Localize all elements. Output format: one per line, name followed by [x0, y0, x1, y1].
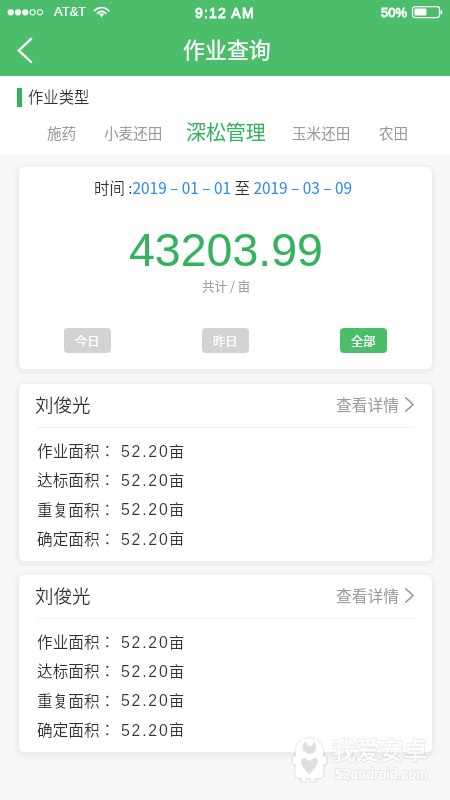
staticText: 我爱安卓: [332, 731, 428, 765]
button[interactable]: 刘俊光: [19, 384, 432, 427]
staticText: 作业类型: [28, 85, 90, 107]
staticText: 确定面积：: [37, 718, 116, 741]
staticText: 亩: [169, 717, 185, 739]
staticText: 亩: [169, 468, 185, 490]
staticText: 重复面积：: [37, 689, 116, 712]
staticText: 50%: [381, 5, 408, 20]
staticText: 亩: [169, 526, 185, 548]
staticText: 共计 / 亩: [202, 276, 251, 294]
button[interactable]: 深松管理: [173, 114, 279, 149]
staticText: 重复面积：: [37, 498, 116, 521]
staticText: 施药: [47, 122, 77, 143]
staticText: 查看详情: [336, 393, 399, 416]
staticText: 亩: [169, 630, 185, 652]
staticText: 亩: [169, 497, 185, 519]
staticText: 52.20: [121, 443, 170, 461]
staticText: 52.20: [121, 692, 170, 710]
button[interactable]: 全部: [340, 328, 387, 353]
staticText: 52.20: [121, 472, 170, 490]
staticText: 时间 :2019 – 01 – 01 至 2019 – 03 – 09: [94, 176, 353, 198]
staticText: 达标面积：: [37, 468, 116, 491]
staticText: 52.20: [121, 501, 170, 519]
staticText: 农田: [379, 122, 409, 143]
staticText: 昨日: [213, 332, 238, 350]
staticText: 亩: [169, 439, 185, 461]
staticText: 深松管理: [186, 117, 266, 146]
staticText: 玉米还田: [292, 122, 351, 143]
staticText: AT&T: [54, 4, 87, 19]
button[interactable]: 刘俊光: [19, 575, 432, 618]
staticText: 52.20: [121, 722, 170, 740]
button[interactable]: 玉米还田: [279, 119, 364, 146]
staticText: 刘俊光: [35, 582, 91, 609]
staticText: 亩: [169, 659, 185, 681]
staticText: 52android.com: [335, 766, 428, 782]
staticText: 52.20: [121, 531, 170, 549]
staticText: 亩: [169, 688, 185, 710]
staticText: 作业面积：: [37, 630, 116, 653]
staticText: 小麦还田: [104, 122, 163, 143]
staticText: 52.20: [121, 634, 170, 652]
button[interactable]: Back: [0, 24, 48, 76]
staticText: 43203.99: [129, 224, 323, 276]
staticText: 确定面积：: [37, 527, 116, 550]
staticText: 52.20: [121, 663, 170, 681]
button[interactable]: 小麦还田: [91, 119, 176, 146]
staticText: 全部: [351, 332, 376, 350]
staticText: 刘俊光: [35, 391, 91, 418]
button[interactable]: 今日: [64, 328, 111, 353]
staticText: 查看详情: [336, 584, 399, 607]
staticText: 我爱安卓: [332, 731, 428, 765]
staticText: 作业面积：: [37, 439, 116, 462]
staticText: 达标面积：: [37, 659, 116, 682]
staticText: 9:12 AM: [195, 5, 255, 21]
button[interactable]: 施药: [34, 119, 90, 146]
button[interactable]: 昨日: [202, 328, 249, 353]
button[interactable]: 农田: [366, 119, 422, 146]
staticText: 作业查询: [183, 33, 271, 65]
staticText: 今日: [75, 332, 100, 350]
staticText: 52android.com: [335, 766, 428, 782]
